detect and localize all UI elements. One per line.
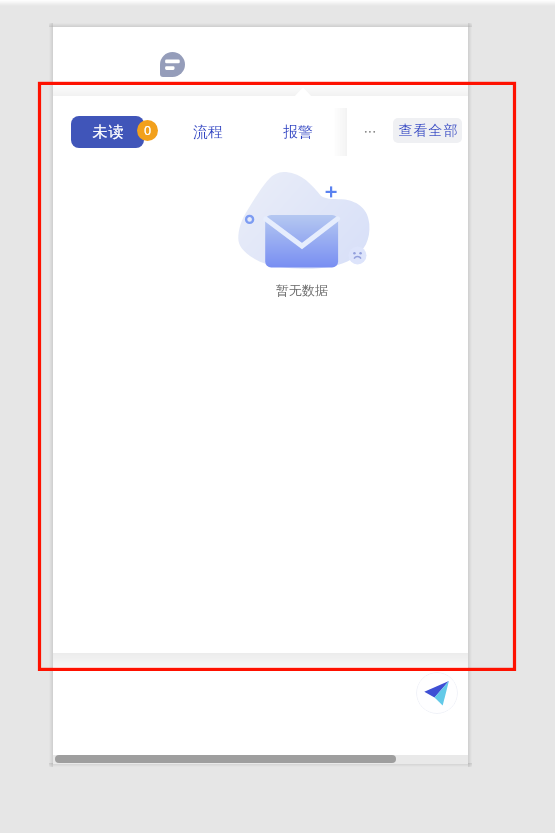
button[interactable]: 报警: [270, 116, 326, 148]
button[interactable]: 查看全部: [393, 118, 462, 143]
staticText: 流程: [193, 123, 223, 142]
button[interactable]: 流程: [180, 116, 236, 148]
button[interactable]: 未读: [71, 116, 144, 148]
staticText: 未读: [92, 123, 124, 142]
staticText: 查看全部: [398, 122, 458, 140]
staticText: 0: [144, 122, 152, 139]
button[interactable]: [55, 755, 396, 763]
button[interactable]: 0: [137, 120, 158, 141]
staticText: 暂无数据: [276, 282, 328, 298]
button[interactable]: Send message: [416, 672, 458, 714]
staticText: 报警: [283, 123, 313, 142]
button[interactable]: Messages: [160, 52, 185, 77]
button[interactable]: More options: [356, 116, 384, 148]
